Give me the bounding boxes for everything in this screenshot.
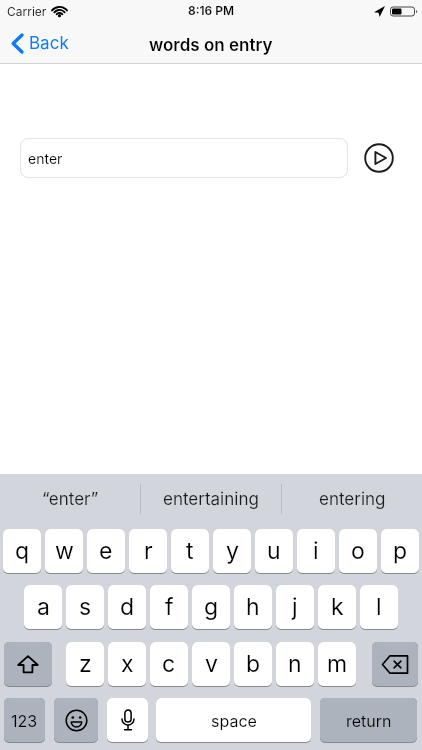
staticText: words on entry bbox=[149, 35, 273, 56]
button[interactable]: u bbox=[255, 529, 293, 573]
button[interactable]: p bbox=[381, 529, 419, 573]
button[interactable]: m bbox=[318, 642, 356, 686]
button[interactable]: return bbox=[320, 698, 417, 742]
staticText: x bbox=[121, 650, 134, 678]
staticText: k bbox=[331, 593, 344, 621]
button[interactable]: d bbox=[108, 585, 146, 629]
staticText: y bbox=[226, 537, 239, 565]
button[interactable]: j bbox=[276, 585, 314, 629]
staticText: space bbox=[211, 711, 257, 730]
button[interactable]: k bbox=[318, 585, 356, 629]
button[interactable]: x bbox=[108, 642, 146, 686]
staticText: Carrier bbox=[7, 4, 47, 19]
button[interactable]: o bbox=[339, 529, 377, 573]
button[interactable]: “enter” bbox=[0, 474, 140, 524]
staticText: h bbox=[246, 593, 260, 621]
button[interactable]: Back bbox=[11, 33, 69, 54]
button[interactable]: h bbox=[234, 585, 272, 629]
button[interactable]: a bbox=[24, 585, 62, 629]
staticText: Back bbox=[29, 33, 69, 54]
staticText: s bbox=[79, 593, 92, 621]
button[interactable]: space bbox=[156, 698, 311, 742]
button[interactable]: entertaining bbox=[141, 474, 281, 524]
staticText: l bbox=[376, 593, 382, 621]
staticText: u bbox=[267, 537, 281, 565]
staticText: r bbox=[144, 537, 153, 565]
staticText: f bbox=[165, 593, 174, 621]
button[interactable]: s bbox=[66, 585, 104, 629]
staticText: m bbox=[327, 650, 348, 678]
staticText: i bbox=[313, 537, 319, 565]
button[interactable]: enter bbox=[20, 138, 348, 178]
staticText: g bbox=[204, 593, 219, 621]
staticText: b bbox=[246, 650, 261, 678]
button[interactable] bbox=[54, 698, 98, 742]
button[interactable]: b bbox=[234, 642, 272, 686]
button[interactable] bbox=[4, 642, 52, 686]
staticText: “enter” bbox=[42, 489, 99, 510]
button[interactable]: c bbox=[150, 642, 188, 686]
button[interactable] bbox=[364, 143, 394, 173]
button[interactable]: f bbox=[150, 585, 188, 629]
button[interactable]: n bbox=[276, 642, 314, 686]
staticText: j bbox=[292, 593, 298, 621]
button[interactable]: w bbox=[45, 529, 83, 573]
button[interactable] bbox=[372, 642, 418, 686]
staticText: d bbox=[120, 593, 135, 621]
button[interactable]: entering bbox=[282, 474, 422, 524]
button[interactable]: v bbox=[192, 642, 230, 686]
staticText: q bbox=[15, 537, 30, 565]
staticText: a bbox=[37, 593, 50, 621]
staticText: o bbox=[351, 537, 365, 565]
staticText: enter bbox=[28, 150, 63, 167]
button[interactable]: l bbox=[360, 585, 398, 629]
staticText: entertaining bbox=[163, 489, 259, 510]
button[interactable] bbox=[107, 698, 148, 742]
staticText: e bbox=[99, 537, 113, 565]
staticText: p bbox=[393, 537, 408, 565]
staticText: n bbox=[288, 650, 302, 678]
staticText: 8:16 PM bbox=[188, 3, 235, 18]
staticText: 123 bbox=[11, 711, 38, 730]
button[interactable]: 123 bbox=[4, 698, 45, 742]
button[interactable]: q bbox=[3, 529, 41, 573]
button[interactable]: y bbox=[213, 529, 251, 573]
staticText: w bbox=[55, 537, 74, 565]
staticText: c bbox=[162, 650, 176, 678]
button[interactable]: t bbox=[171, 529, 209, 573]
staticText: z bbox=[79, 650, 92, 678]
button[interactable]: z bbox=[66, 642, 104, 686]
staticText: return bbox=[346, 711, 392, 730]
button[interactable]: g bbox=[192, 585, 230, 629]
button[interactable]: i bbox=[297, 529, 335, 573]
staticText: v bbox=[205, 650, 218, 678]
button[interactable]: r bbox=[129, 529, 167, 573]
button[interactable]: e bbox=[87, 529, 125, 573]
staticText: entering bbox=[319, 489, 386, 510]
staticText: t bbox=[186, 537, 194, 565]
